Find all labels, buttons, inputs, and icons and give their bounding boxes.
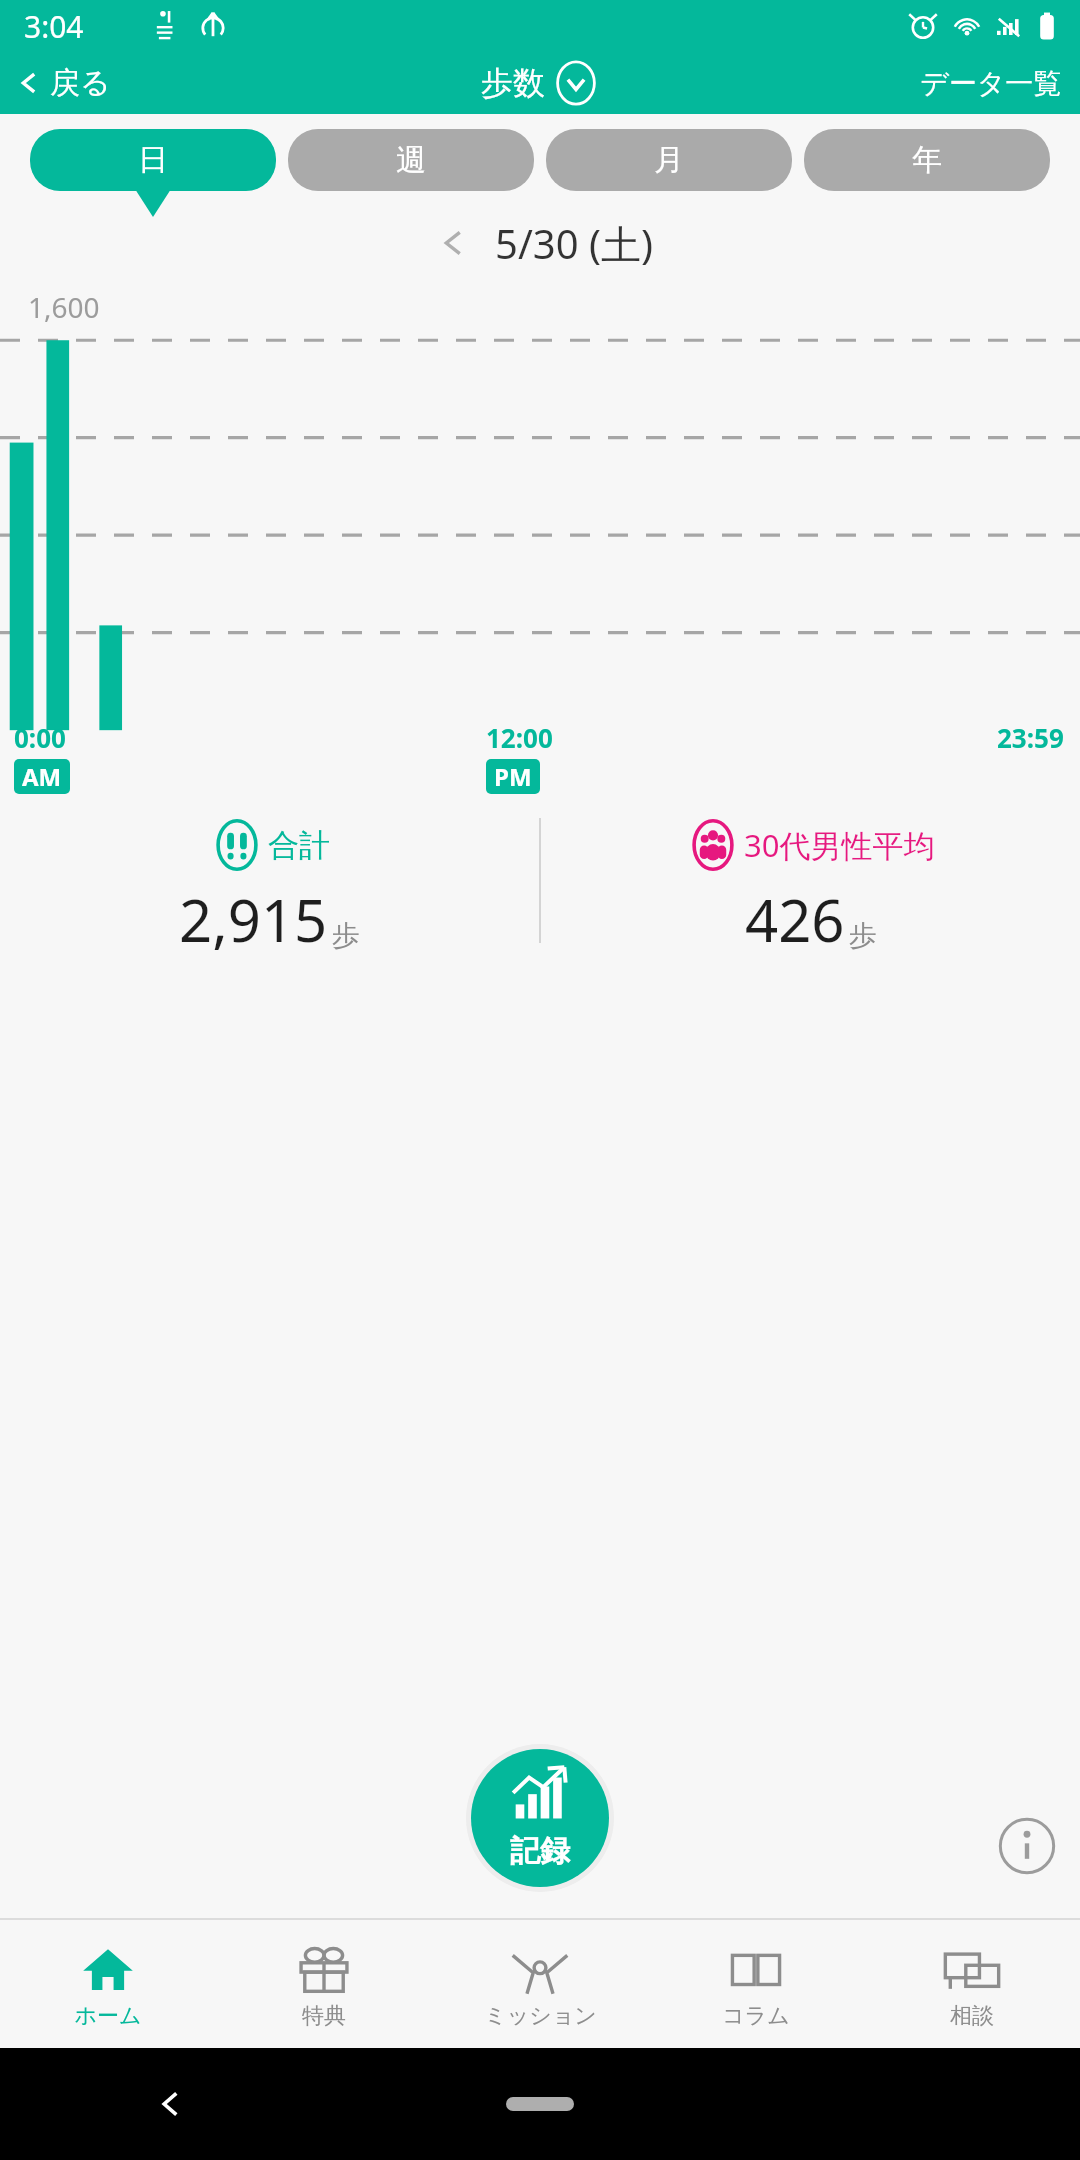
staticText: 戻る <box>50 64 111 102</box>
staticText: 1,600 <box>28 288 100 326</box>
staticText: 3:04 <box>24 6 84 47</box>
staticText: ミッション <box>484 2002 597 2030</box>
staticText: 歩 <box>849 918 877 953</box>
staticText: 合計 <box>268 826 330 865</box>
staticText: 記録 <box>510 1832 570 1870</box>
staticText: 歩数 <box>481 63 545 103</box>
staticText: コラム <box>722 2002 790 2030</box>
staticText: 5/30 (土) <box>495 216 653 271</box>
staticText: 週 <box>396 141 426 179</box>
button[interactable]: 合計 <box>0 818 539 959</box>
staticText: 12:00 <box>486 720 553 755</box>
staticText: ホーム <box>74 2002 142 2030</box>
staticText: 日 <box>138 141 168 179</box>
staticText: 年 <box>912 141 942 179</box>
staticText: 30代男性平均 <box>744 824 935 866</box>
button[interactable]: 相談 <box>864 1920 1080 2048</box>
staticText: 相談 <box>950 2002 994 2030</box>
button[interactable]: ミッション <box>432 1920 648 2048</box>
button[interactable]: 前の日 <box>427 217 479 269</box>
button[interactable]: 年 <box>804 129 1050 191</box>
button[interactable]: 記録 <box>471 1749 609 1887</box>
button[interactable]: ホーム <box>0 1920 216 2048</box>
staticText: 2,915 <box>179 880 328 959</box>
button[interactable]: 戻る <box>0 56 131 110</box>
button[interactable]: 歩数 <box>481 60 599 106</box>
button[interactable]: 週 <box>288 129 534 191</box>
button[interactable]: 情報 <box>998 1817 1056 1875</box>
staticText: 0:00 <box>14 720 66 755</box>
button[interactable]: 月 <box>546 129 792 191</box>
staticText: 426 <box>745 880 845 959</box>
staticText: 23:59 <box>997 720 1064 755</box>
button[interactable]: 特典 <box>216 1920 432 2048</box>
button[interactable]: 30代男性平均 <box>541 818 1080 959</box>
button[interactable]: データ一覧 <box>902 56 1080 111</box>
button[interactable]: コラム <box>648 1920 864 2048</box>
staticText: 月 <box>654 141 684 179</box>
button[interactable]: 日 <box>30 129 276 191</box>
staticText: 歩 <box>332 918 360 953</box>
staticText: PM <box>494 760 532 793</box>
other: 戻る <box>152 2085 190 2123</box>
staticText: 特典 <box>302 2002 346 2030</box>
staticText: AM <box>22 760 62 793</box>
